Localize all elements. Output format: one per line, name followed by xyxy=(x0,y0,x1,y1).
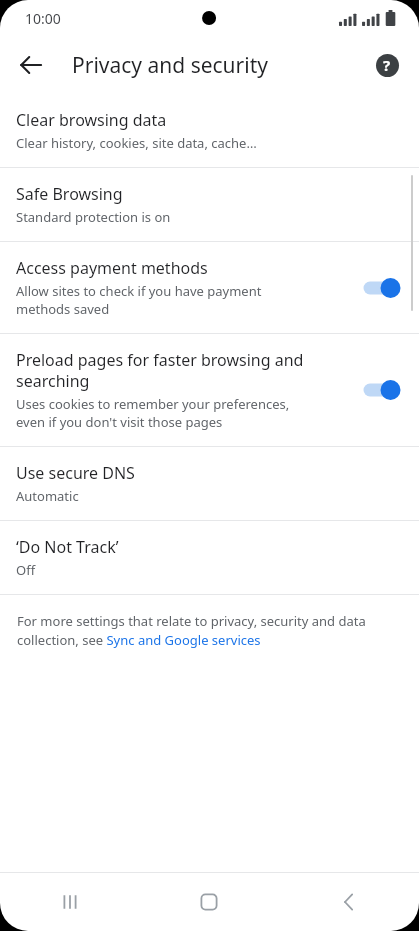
button[interactable]: Access payment methods xyxy=(0,242,419,333)
staticText: ? xyxy=(383,55,391,75)
button[interactable]: Use secure DNS xyxy=(0,447,419,520)
staticText: Clear browsing data xyxy=(16,109,167,131)
staticText: 10:00 xyxy=(25,9,61,28)
staticText: Uses cookies to remember your preference… xyxy=(16,395,290,431)
button[interactable]: Help xyxy=(365,43,409,87)
button[interactable]: Clear browsing data xyxy=(0,94,419,167)
staticText: Clear history, cookies, site data, cache… xyxy=(16,134,257,152)
button[interactable]: Home xyxy=(139,873,279,931)
button[interactable]: Toggle setting xyxy=(355,268,409,308)
button[interactable]: ‘Do Not Track’ xyxy=(0,521,419,594)
button[interactable]: Toggle setting xyxy=(355,370,409,410)
button[interactable]: Safe Browsing xyxy=(0,168,419,241)
staticText: Allow sites to check if you have payment… xyxy=(16,282,262,318)
button[interactable]: Preload pages for faster browsing and se… xyxy=(0,334,419,446)
staticText: Automatic xyxy=(16,487,79,505)
staticText: Access payment methods xyxy=(16,257,208,279)
staticText: Off xyxy=(16,561,36,579)
button[interactable]: Recents xyxy=(0,873,139,931)
staticText: Safe Browsing xyxy=(16,183,123,205)
staticText: Standard protection is on xyxy=(16,208,171,226)
button[interactable]: Back xyxy=(8,42,54,88)
staticText: Use secure DNS xyxy=(16,462,135,484)
staticText: For more settings that relate to privacy… xyxy=(17,612,401,649)
staticText: Preload pages for faster browsing and se… xyxy=(16,349,304,392)
staticText: ‘Do Not Track’ xyxy=(16,536,119,558)
button[interactable]: Back xyxy=(279,873,419,931)
staticText: Privacy and security xyxy=(72,51,268,80)
